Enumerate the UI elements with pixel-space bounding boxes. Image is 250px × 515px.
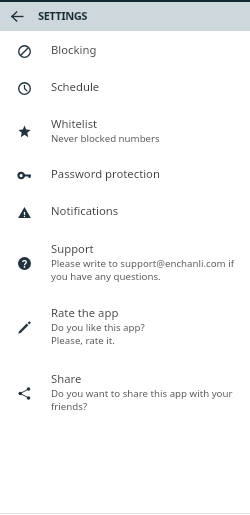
staticText: Rate the app: [51, 305, 119, 320]
button[interactable]: Whitelist: [0, 109, 250, 150]
staticText: Please, rate it.: [51, 334, 115, 347]
staticText: Support: [51, 241, 94, 256]
staticText: Please write to support@enchanli.com if: [51, 257, 234, 270]
staticText: Never blocked numbers: [51, 132, 160, 145]
button[interactable]: Support: [0, 234, 250, 288]
button[interactable]: Password protection: [0, 159, 250, 188]
staticText: SETTINGS: [38, 8, 87, 23]
staticText: Blocking: [51, 42, 97, 57]
staticText: you have any questions.: [51, 270, 161, 283]
button[interactable]: Rate the app: [0, 298, 250, 352]
button[interactable]: Share: [0, 364, 250, 418]
button[interactable]: Notifications: [0, 196, 250, 225]
button[interactable]: Blocking: [0, 35, 250, 64]
staticText: Share: [51, 371, 82, 386]
staticText: Password protection: [51, 166, 160, 181]
staticText: friends?: [51, 400, 88, 413]
staticText: Do you want to share this app with your: [51, 387, 233, 400]
staticText: Schedule: [51, 79, 100, 94]
button[interactable]: Schedule: [0, 72, 250, 101]
staticText: Whitelist: [51, 116, 98, 131]
staticText: Notifications: [51, 203, 119, 218]
button[interactable]: Back: [5, 4, 29, 28]
staticText: Do you like this app?: [51, 321, 145, 334]
